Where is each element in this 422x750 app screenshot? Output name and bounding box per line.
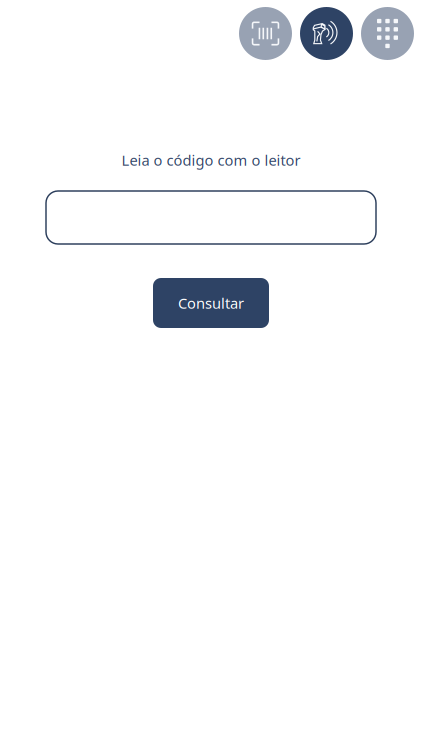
button[interactable]: Campo do código xyxy=(0,191,422,244)
button[interactable]: Escanear código xyxy=(239,7,292,60)
staticText: Consultar xyxy=(178,293,244,313)
staticText: Leia o código com o leitor xyxy=(121,150,300,170)
button[interactable]: Teclado numérico xyxy=(361,7,414,60)
button[interactable]: Leitor de código de barras xyxy=(300,7,353,60)
button[interactable]: Consultar xyxy=(153,278,269,328)
